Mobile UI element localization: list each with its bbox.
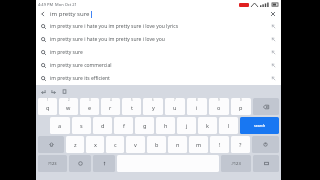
button[interactable]: 6 bbox=[143, 98, 163, 115]
staticText: 9 bbox=[218, 98, 220, 102]
button[interactable]: n bbox=[168, 136, 187, 153]
button[interactable]: g bbox=[135, 117, 154, 134]
staticText: u bbox=[173, 104, 177, 111]
button[interactable]: c bbox=[106, 136, 124, 153]
staticText: 2 bbox=[68, 98, 70, 102]
staticText: b bbox=[155, 141, 159, 148]
button[interactable]: im pretty sure its efficient bbox=[36, 72, 281, 85]
button[interactable]: l bbox=[219, 117, 238, 134]
staticText: k bbox=[206, 122, 209, 129]
button[interactable]: Switch keyboard bbox=[253, 155, 279, 172]
button[interactable]: v bbox=[126, 136, 145, 153]
staticText: 1 bbox=[47, 98, 49, 102]
staticText: t bbox=[131, 104, 133, 111]
button[interactable]: Undo bbox=[40, 88, 47, 95]
button[interactable]: Voice input bbox=[93, 155, 115, 172]
staticText: search bbox=[254, 123, 266, 128]
staticText: im pretty sure its efficient bbox=[50, 75, 265, 82]
staticText: m bbox=[196, 141, 202, 148]
button[interactable]: a bbox=[50, 117, 70, 134]
button[interactable]: Backspace bbox=[253, 98, 279, 115]
button[interactable]: 9 bbox=[209, 98, 229, 115]
staticText: 3 bbox=[89, 98, 91, 102]
button[interactable]: im pretty sure commercial bbox=[36, 59, 281, 72]
staticText: .?123 bbox=[231, 161, 241, 166]
staticText: l bbox=[228, 122, 230, 129]
button[interactable]: im pretty sure bbox=[36, 46, 281, 59]
button[interactable]: 7 bbox=[165, 98, 185, 115]
button[interactable]: Insert suggestion bbox=[265, 72, 281, 85]
button[interactable]: Clipboard bbox=[61, 88, 68, 95]
staticText: q bbox=[46, 104, 50, 111]
staticText: y bbox=[152, 104, 155, 111]
button[interactable]: h bbox=[156, 117, 175, 134]
button[interactable]: im pretty sure i hate you im pretty sure… bbox=[36, 33, 281, 46]
button[interactable]: ?123 bbox=[38, 155, 67, 172]
staticText: 5 bbox=[131, 98, 133, 102]
staticText: ! bbox=[219, 141, 221, 148]
staticText: w bbox=[66, 104, 71, 111]
button[interactable]: Back bbox=[36, 8, 50, 20]
button[interactable]: 2 bbox=[59, 98, 78, 115]
button[interactable]: 4 bbox=[101, 98, 120, 115]
button[interactable]: im pretty sure i hate you im pretty sure… bbox=[36, 20, 281, 33]
button[interactable]: 3 bbox=[80, 98, 99, 115]
staticText: i bbox=[196, 104, 198, 111]
button[interactable]: Insert suggestion bbox=[265, 59, 281, 72]
staticText: s bbox=[80, 122, 83, 129]
button[interactable]: k bbox=[198, 117, 217, 134]
staticText: x bbox=[94, 141, 97, 148]
staticText: n bbox=[176, 141, 180, 148]
button[interactable]: Insert suggestion bbox=[265, 46, 281, 59]
button[interactable]: ? bbox=[231, 136, 250, 153]
staticText: im pretty sure bbox=[50, 49, 265, 56]
button[interactable]: s bbox=[72, 117, 91, 134]
button[interactable]: Emoji bbox=[69, 155, 91, 172]
staticText: im pretty sure bbox=[50, 10, 90, 18]
staticText: f bbox=[123, 122, 125, 129]
button[interactable]: 5 bbox=[122, 98, 141, 115]
staticText: im pretty sure i hate you im pretty sure… bbox=[50, 36, 265, 43]
button[interactable]: Insert suggestion bbox=[265, 20, 281, 33]
staticText: 7 bbox=[174, 98, 176, 102]
button[interactable]: Delete bbox=[252, 136, 279, 153]
staticText: ?123 bbox=[48, 161, 57, 166]
button[interactable]: Insert suggestion bbox=[265, 33, 281, 46]
staticText: o bbox=[217, 104, 221, 111]
staticText: r bbox=[109, 104, 112, 111]
button[interactable]: d bbox=[93, 117, 112, 134]
staticText: ? bbox=[239, 141, 242, 148]
staticText: d bbox=[101, 122, 105, 129]
staticText: p bbox=[239, 104, 243, 111]
button[interactable]: search bbox=[240, 117, 279, 134]
button[interactable]: 1 bbox=[38, 98, 57, 115]
button[interactable]: f bbox=[114, 117, 133, 134]
staticText: z bbox=[74, 141, 77, 148]
staticText: j bbox=[186, 122, 188, 129]
button[interactable]: Shift bbox=[38, 136, 64, 153]
staticText: im pretty sure commercial bbox=[50, 62, 265, 69]
staticText: 4:49 PM Mon Oct 21 bbox=[38, 2, 77, 7]
button[interactable]: m bbox=[189, 136, 208, 153]
staticText: 6 bbox=[152, 98, 154, 102]
button[interactable]: 8 bbox=[187, 98, 207, 115]
staticText: h bbox=[164, 122, 168, 129]
staticText: v bbox=[134, 141, 137, 148]
button[interactable]: x bbox=[86, 136, 104, 153]
staticText: g bbox=[143, 122, 147, 129]
staticText: 4 bbox=[110, 98, 112, 102]
button[interactable]: ! bbox=[210, 136, 229, 153]
button[interactable]: .?123 bbox=[221, 155, 251, 172]
button[interactable]: b bbox=[147, 136, 166, 153]
staticText: 8 bbox=[196, 98, 198, 102]
button[interactable]: 0 bbox=[231, 98, 251, 115]
staticText: e bbox=[88, 104, 92, 111]
button[interactable]: j bbox=[177, 117, 196, 134]
staticText: im pretty sure i hate you im pretty sure… bbox=[50, 23, 265, 30]
button[interactable]: z bbox=[66, 136, 84, 153]
staticText: c bbox=[114, 141, 117, 148]
button[interactable]: Redo bbox=[50, 88, 57, 95]
staticText: 0 bbox=[240, 98, 242, 102]
button[interactable]: Clear query bbox=[265, 8, 281, 20]
